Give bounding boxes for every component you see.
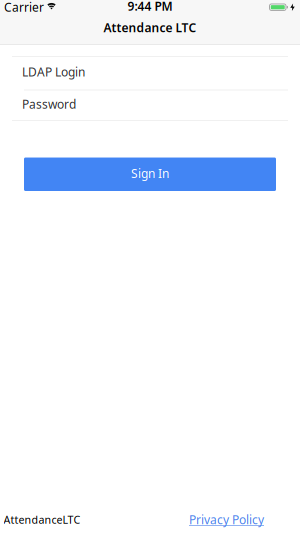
- staticText: Attendance LTC: [103, 19, 196, 35]
- staticText: AttendanceLTC: [3, 512, 80, 527]
- button[interactable]: Sign In: [24, 157, 276, 191]
- button[interactable]: Privacy Policy: [189, 512, 264, 527]
- staticText: Carrier: [4, 0, 44, 15]
- staticText: Privacy Policy: [189, 512, 264, 527]
- staticText: Sign In: [131, 165, 169, 181]
- staticText: 9:44 PM: [127, 0, 172, 14]
- staticText: LDAP Login: [22, 64, 85, 80]
- button[interactable]: LDAP Login: [0, 57, 300, 89]
- staticText: Password: [22, 96, 76, 112]
- button[interactable]: Password: [0, 90, 300, 120]
